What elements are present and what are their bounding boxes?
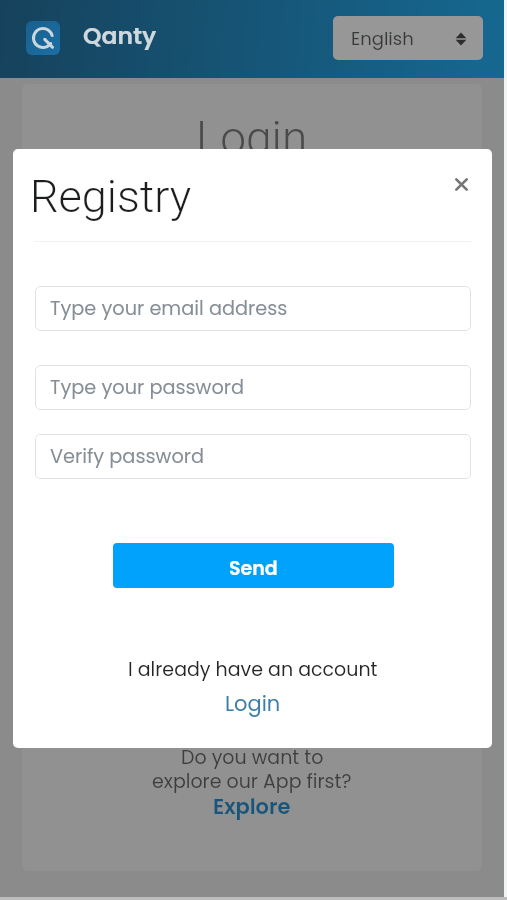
button[interactable]: Explore [201, 789, 303, 824]
button[interactable]: Send [113, 543, 394, 588]
staticText: Verify password [50, 443, 204, 470]
staticText: Type your password [50, 374, 245, 401]
staticText: English [351, 26, 414, 51]
staticText: Registry [30, 170, 192, 223]
staticText: Qanty [83, 19, 157, 52]
button[interactable]: Type your password [35, 365, 471, 410]
staticText: Send [229, 555, 278, 582]
button[interactable]: Login [211, 686, 295, 721]
button[interactable]: Qanty [26, 21, 157, 55]
staticText: Login [196, 111, 308, 165]
staticText: I already have an account [128, 656, 378, 683]
button[interactable]: Type your email address [35, 286, 471, 331]
staticText: explore our App first? [152, 768, 352, 795]
staticText: Type your email address [50, 295, 288, 322]
button[interactable]: Close dialog [441, 164, 481, 204]
button[interactable]: Verify password [35, 434, 471, 479]
staticText: Do you want to [181, 744, 324, 771]
button[interactable]: English [333, 16, 483, 60]
